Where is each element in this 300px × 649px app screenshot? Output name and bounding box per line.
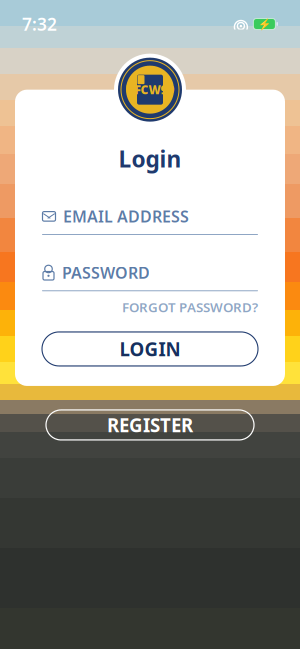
staticText: UFCW99 — [125, 82, 174, 98]
staticText: PASSWORD — [62, 262, 150, 283]
staticText: REGISTER — [107, 413, 193, 437]
staticText: ⚡ — [258, 18, 271, 30]
staticText: 7:32 — [22, 12, 57, 35]
staticText: FORGOT PASSWORD? — [122, 298, 258, 316]
button[interactable]: FORGOT PASSWORD? — [42, 298, 258, 316]
staticText: EMAIL ADDRESS — [63, 206, 189, 227]
staticText: LOGIN — [119, 337, 180, 361]
button[interactable]: REGISTER — [46, 410, 254, 440]
button[interactable]: LOGIN — [42, 332, 258, 366]
staticText: Login — [118, 144, 181, 174]
